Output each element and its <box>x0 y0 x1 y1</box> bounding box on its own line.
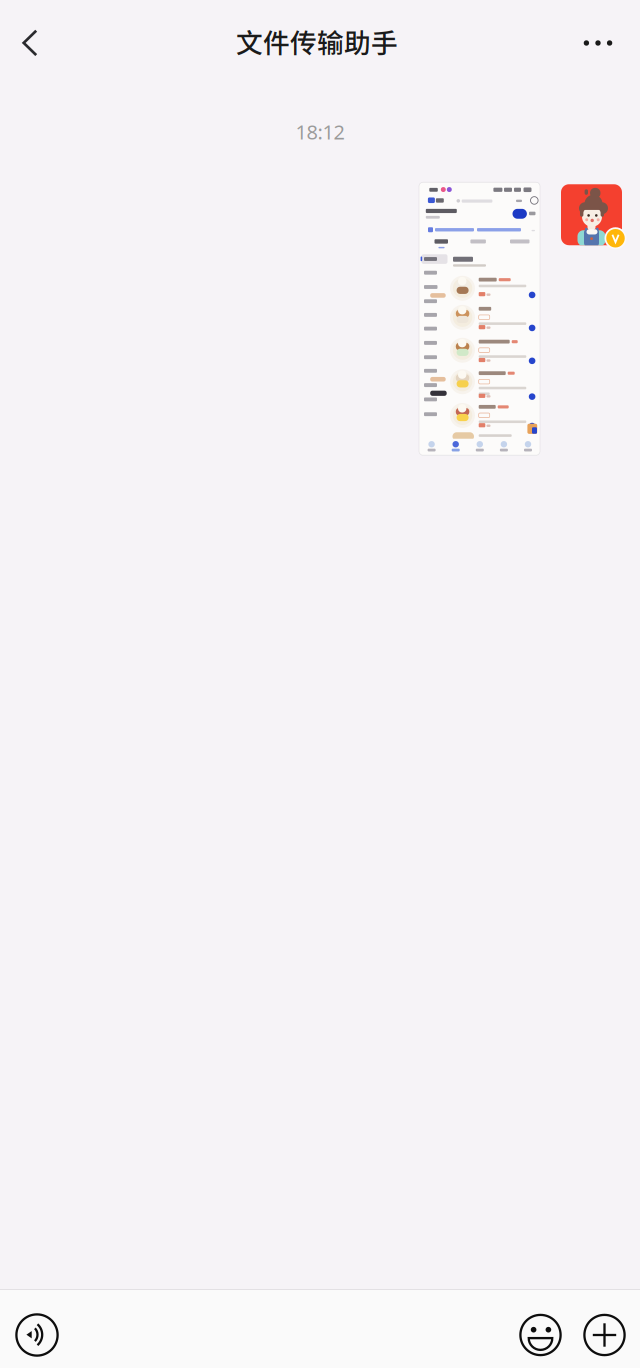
staticText: 18:12 <box>295 118 344 145</box>
button[interactable]: Voice input <box>0 1295 69 1363</box>
button[interactable]: Back <box>0 15 58 71</box>
button[interactable]: Photo message <box>419 182 540 455</box>
button[interactable]: Emoji <box>497 1295 572 1362</box>
button[interactable]: More options <box>572 1295 640 1362</box>
button[interactable]: More <box>562 15 640 71</box>
staticText: 文件传输助手 <box>236 22 398 60</box>
